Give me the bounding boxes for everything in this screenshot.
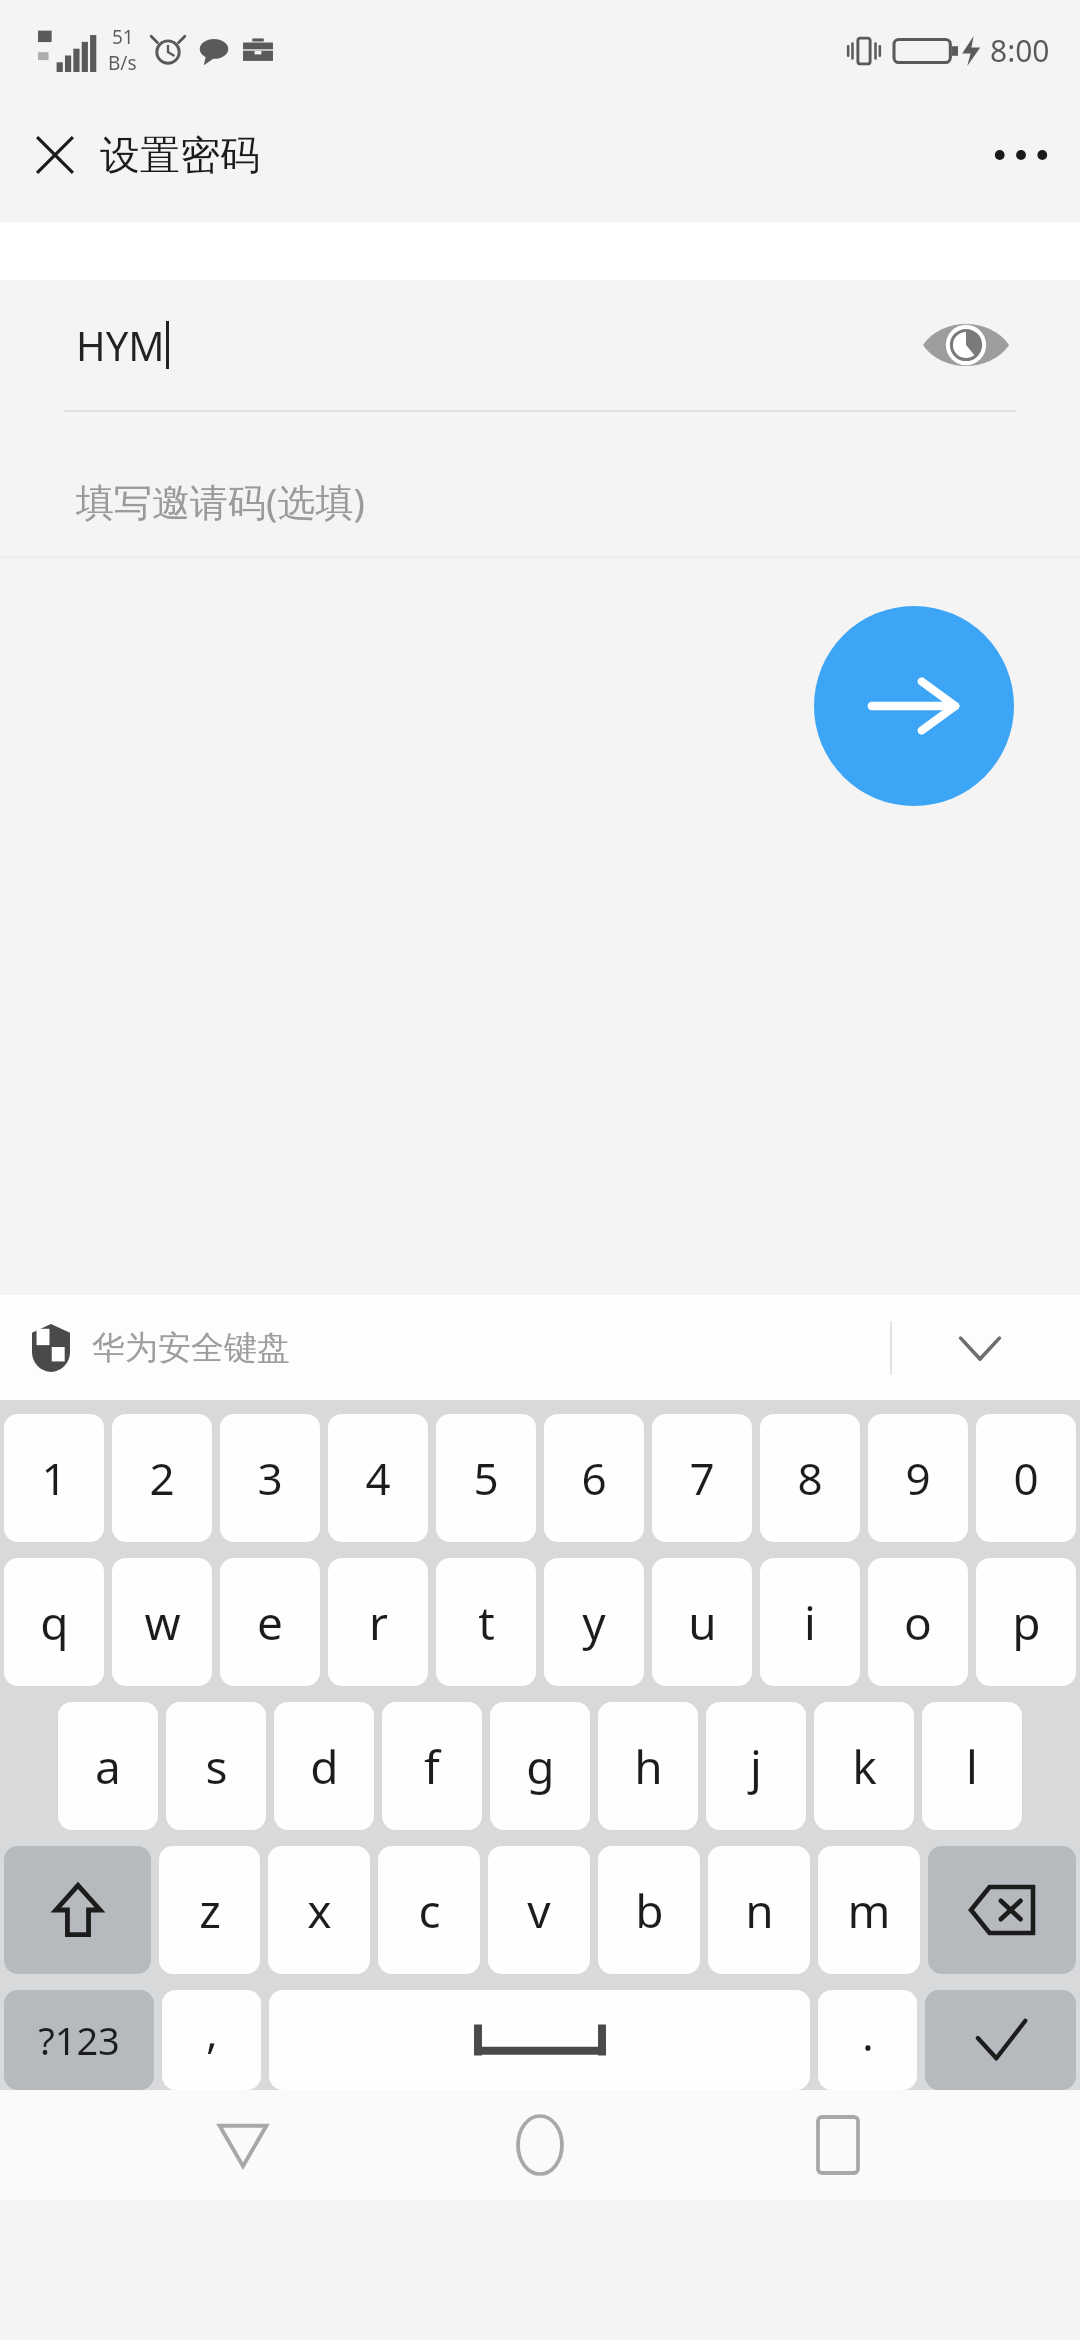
- staticText: e: [257, 1591, 283, 1654]
- staticText: 华为安全键盘: [92, 1327, 290, 1369]
- staticText: 3: [257, 1448, 283, 1508]
- button[interactable]: Recents: [783, 2090, 893, 2200]
- button[interactable]: e: [220, 1558, 320, 1686]
- button[interactable]: Space: [269, 1990, 810, 2090]
- button[interactable]: 7: [652, 1414, 752, 1542]
- button[interactable]: j: [706, 1702, 806, 1830]
- button[interactable]: 3: [220, 1414, 320, 1542]
- button[interactable]: Home: [485, 2090, 595, 2200]
- button[interactable]: Hide keyboard: [932, 1300, 1028, 1396]
- button[interactable]: More options: [984, 118, 1058, 192]
- staticText: s: [205, 1735, 228, 1798]
- staticText: ?123: [38, 2014, 120, 2066]
- staticText: v: [527, 1879, 551, 1942]
- button[interactable]: a: [58, 1702, 158, 1830]
- staticText: B/s: [108, 50, 137, 76]
- button[interactable]: f: [382, 1702, 482, 1830]
- button[interactable]: .: [818, 1990, 917, 2090]
- button[interactable]: t: [436, 1558, 536, 1686]
- staticText: o: [904, 1591, 932, 1654]
- staticText: y: [582, 1591, 606, 1654]
- staticText: q: [40, 1591, 69, 1654]
- staticText: f: [424, 1735, 440, 1798]
- staticText: w: [144, 1591, 181, 1654]
- staticText: d: [310, 1735, 339, 1798]
- button[interactable]: y: [544, 1558, 644, 1686]
- button[interactable]: 9: [868, 1414, 968, 1542]
- button[interactable]: Show password: [918, 297, 1014, 393]
- staticText: 设置密码: [100, 130, 260, 180]
- button[interactable]: Shift: [4, 1846, 151, 1974]
- button[interactable]: ?123: [4, 1990, 154, 2090]
- staticText: k: [852, 1735, 877, 1798]
- button[interactable]: k: [814, 1702, 914, 1830]
- staticText: h: [634, 1735, 663, 1798]
- button[interactable]: r: [328, 1558, 428, 1686]
- button[interactable]: q: [4, 1558, 104, 1686]
- staticText: x: [307, 1879, 332, 1942]
- staticText: 4: [365, 1448, 391, 1508]
- button[interactable]: 填写邀请码(选填): [0, 446, 1080, 556]
- button[interactable]: 6: [544, 1414, 644, 1542]
- button[interactable]: h: [598, 1702, 698, 1830]
- staticText: 51: [112, 24, 134, 50]
- button[interactable]: HYM: [0, 280, 1080, 410]
- staticText: u: [688, 1591, 717, 1654]
- button[interactable]: z: [159, 1846, 260, 1974]
- button[interactable]: x: [268, 1846, 370, 1974]
- staticText: 1: [41, 1448, 67, 1508]
- button[interactable]: 8: [760, 1414, 860, 1542]
- button[interactable]: v: [488, 1846, 590, 1974]
- staticText: 填写邀请码(选填): [76, 475, 365, 527]
- staticText: i: [804, 1591, 816, 1654]
- staticText: 8: [797, 1448, 823, 1508]
- button[interactable]: 1: [4, 1414, 104, 1542]
- staticText: r: [369, 1591, 388, 1654]
- button[interactable]: b: [598, 1846, 700, 1974]
- staticText: 9: [905, 1448, 931, 1508]
- button[interactable]: s: [166, 1702, 266, 1830]
- button[interactable]: i: [760, 1558, 860, 1686]
- button[interactable]: 4: [328, 1414, 428, 1542]
- staticText: t: [478, 1591, 495, 1654]
- button[interactable]: Enter: [925, 1990, 1076, 2090]
- button[interactable]: Next: [814, 606, 1014, 806]
- staticText: 0: [1013, 1448, 1039, 1508]
- staticText: 6: [581, 1448, 607, 1508]
- staticText: a: [95, 1735, 121, 1798]
- staticText: 5: [473, 1448, 499, 1508]
- staticText: p: [1012, 1591, 1041, 1654]
- button[interactable]: Backspace: [928, 1846, 1076, 1974]
- button[interactable]: Back: [188, 2090, 298, 2200]
- button[interactable]: 2: [112, 1414, 212, 1542]
- staticText: b: [635, 1879, 664, 1942]
- button[interactable]: d: [274, 1702, 374, 1830]
- staticText: 8:00: [990, 30, 1050, 71]
- button[interactable]: w: [112, 1558, 212, 1686]
- button[interactable]: Close: [22, 122, 88, 188]
- button[interactable]: c: [378, 1846, 480, 1974]
- staticText: z: [199, 1879, 221, 1942]
- staticText: g: [526, 1735, 555, 1798]
- staticText: m: [847, 1879, 891, 1942]
- button[interactable]: u: [652, 1558, 752, 1686]
- button[interactable]: 5: [436, 1414, 536, 1542]
- staticText: 7: [689, 1448, 715, 1508]
- button[interactable]: ,: [162, 1990, 261, 2090]
- button[interactable]: g: [490, 1702, 590, 1830]
- button[interactable]: m: [818, 1846, 920, 1974]
- staticText: j: [750, 1735, 762, 1798]
- button[interactable]: p: [976, 1558, 1076, 1686]
- staticText: ,: [206, 2001, 218, 2061]
- staticText: .: [862, 2004, 874, 2064]
- staticText: c: [418, 1879, 441, 1942]
- button[interactable]: 0: [976, 1414, 1076, 1542]
- staticText: 2: [149, 1448, 175, 1508]
- button[interactable]: o: [868, 1558, 968, 1686]
- staticText: HYM: [76, 318, 165, 372]
- staticText: n: [745, 1879, 774, 1942]
- staticText: l: [966, 1735, 978, 1798]
- button[interactable]: n: [708, 1846, 810, 1974]
- button[interactable]: l: [922, 1702, 1022, 1830]
